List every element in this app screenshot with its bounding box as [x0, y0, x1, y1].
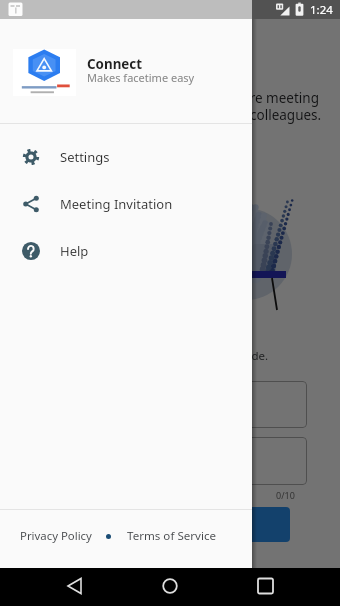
button[interactable]: [24, 437, 307, 485]
staticText: Create and share an invite to a secure m…: [24, 89, 322, 124]
button[interactable]: Help: [0, 227, 252, 274]
button[interactable]: Meeting Invitation: [0, 180, 252, 227]
staticText: Help: [60, 242, 89, 260]
staticText: 0/10: [276, 489, 295, 501]
button[interactable]: Settings: [0, 133, 252, 180]
staticText: Makes facetime easy: [87, 70, 195, 85]
staticText: Terms of Service: [127, 528, 217, 544]
staticText: Connect: [87, 55, 143, 73]
staticText: Meeting Invitation: [60, 195, 173, 213]
button[interactable]: Recent apps: [245, 568, 285, 606]
staticText: 1:24: [310, 2, 333, 18]
button[interactable]: [0, 0, 340, 606]
button[interactable]: CREATE MEETING: [24, 507, 290, 542]
staticText: Settings: [60, 148, 110, 166]
staticText: Privacy Policy: [20, 528, 92, 544]
button[interactable]: Home: [150, 568, 190, 606]
button[interactable]: Terms of Service: [127, 524, 217, 548]
button[interactable]: Connect: [0, 19, 252, 123]
button[interactable]: Privacy Policy: [20, 524, 92, 548]
staticText: CREATE MEETING: [108, 517, 206, 533]
staticText: Just enter the meeting name and a passco…: [24, 348, 269, 364]
button[interactable]: Back: [55, 568, 95, 606]
button[interactable]: [24, 381, 307, 428]
